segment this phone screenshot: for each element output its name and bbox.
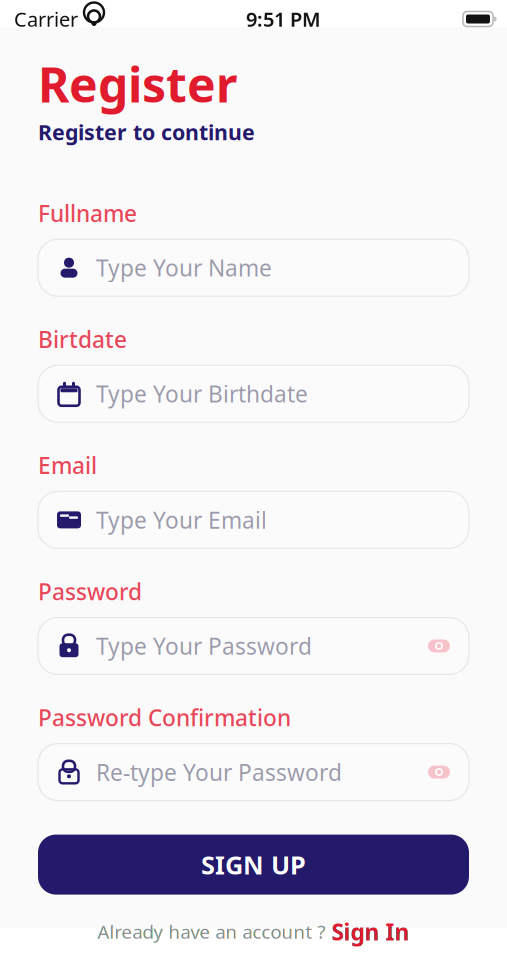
staticText: Type Your Password (96, 631, 312, 661)
staticText: Re-type Your Password (96, 757, 342, 787)
staticText: Sign In (331, 917, 409, 947)
staticText: Password Confirmation (38, 702, 291, 733)
staticText: 9:51 PM (246, 6, 321, 32)
button[interactable]: Type Your Email (38, 491, 469, 548)
staticText: Email (38, 450, 97, 480)
staticText: Register to continue (38, 118, 255, 146)
button[interactable]: Type Your Birthdate (38, 365, 469, 422)
button[interactable]: Already have an account ? (0, 917, 507, 947)
button[interactable]: SIGN UP (38, 835, 469, 895)
staticText: Register (38, 52, 237, 116)
staticText: SIGN UP (201, 848, 306, 881)
button[interactable]: Re-type Your Password (38, 744, 469, 801)
staticText: Type Your Email (96, 505, 267, 535)
staticText: Password (38, 576, 142, 606)
staticText: Type Your Name (96, 253, 272, 283)
staticText: Already have an account ? (97, 919, 325, 944)
button[interactable]: Type Your Name (38, 239, 469, 296)
button[interactable]: Type Your Password (38, 617, 469, 674)
staticText: Birtdate (38, 324, 127, 354)
staticText: Type Your Birthdate (96, 379, 308, 409)
staticText: Fullname (38, 198, 137, 228)
staticText: Carrier (14, 6, 78, 32)
